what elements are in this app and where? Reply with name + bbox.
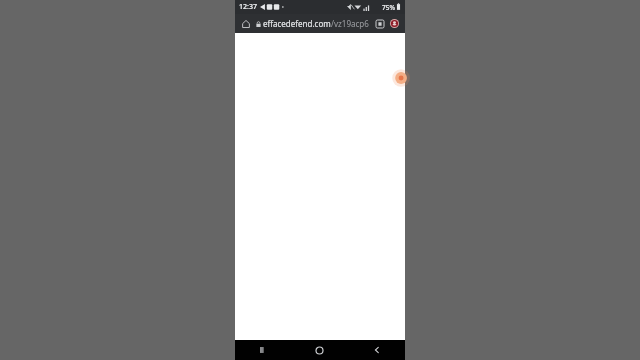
- button[interactable]: Account: [387, 16, 402, 31]
- staticText: 75%: [382, 3, 395, 12]
- button[interactable]: Recent apps: [235, 340, 291, 360]
- staticText: 12:37: [239, 2, 257, 12]
- button[interactable]: Home: [238, 16, 253, 31]
- staticText: /vz19acp6: [331, 18, 369, 29]
- button[interactable]: effacedefend.com: [254, 14, 372, 33]
- staticText: effacedefend.com: [263, 18, 331, 29]
- button[interactable]: Home: [291, 340, 348, 360]
- button[interactable]: Switch tabs: [372, 16, 387, 31]
- button[interactable]: Back: [348, 340, 405, 360]
